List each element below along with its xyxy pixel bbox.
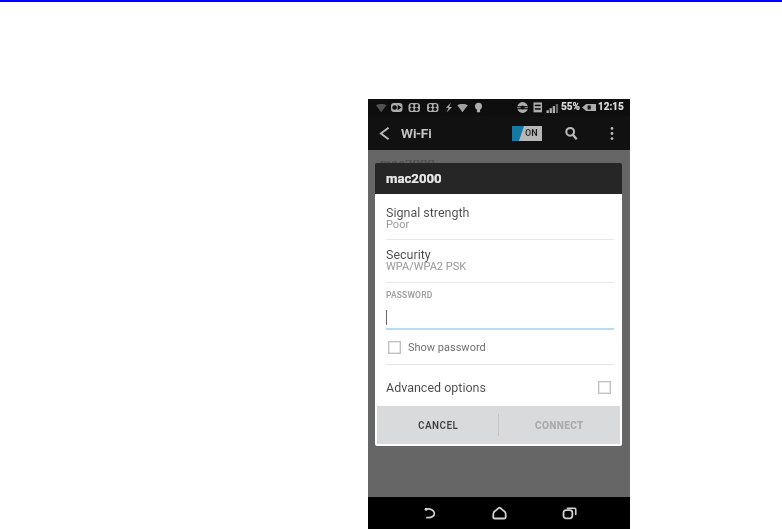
button[interactable]: Advanced options (375, 368, 622, 406)
staticText: Wi-Fi (401, 125, 432, 141)
button[interactable]: CANCEL (377, 406, 498, 444)
staticText: mac2000 (386, 171, 442, 186)
button[interactable]: Search (557, 116, 585, 150)
staticText: Security (386, 247, 431, 262)
button[interactable]: Wi-Fi on (512, 126, 542, 141)
button[interactable]: Recent apps (546, 497, 592, 529)
button[interactable]: Show password (388, 336, 523, 358)
button[interactable]: Back (407, 497, 452, 529)
button[interactable]: More options (599, 116, 625, 150)
staticText: Show password (408, 341, 486, 354)
staticText: Advanced options (386, 380, 486, 395)
staticText: Poor (386, 218, 410, 231)
staticText: CANCEL (418, 420, 459, 432)
staticText: WPA/WPA2 PSK (386, 260, 467, 273)
staticText: CONNECT (535, 420, 584, 432)
button[interactable]: Home (476, 497, 522, 529)
button[interactable]: CONNECT (499, 406, 620, 444)
staticText: mac2000 (380, 160, 435, 163)
staticText: 55% (561, 101, 580, 113)
button[interactable]: Navigate up (370, 116, 398, 150)
staticText: 12:15 (598, 101, 624, 113)
staticText: ON (525, 128, 538, 139)
staticText: PASSWORD (386, 290, 433, 300)
staticText: Signal strength (386, 205, 470, 220)
